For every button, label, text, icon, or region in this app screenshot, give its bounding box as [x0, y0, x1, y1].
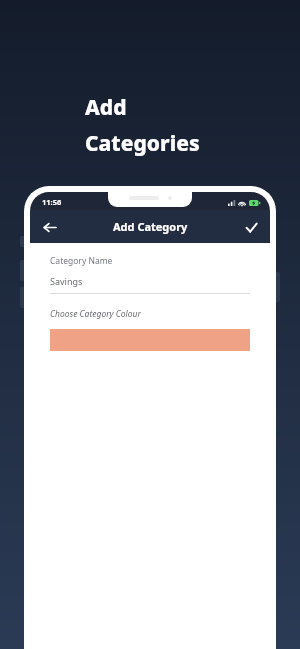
- button[interactable]: Back: [36, 214, 62, 240]
- staticText: Choose Category Colour: [50, 308, 141, 320]
- staticText: Savings: [50, 275, 83, 287]
- staticText: Category Name: [50, 255, 113, 267]
- staticText: Add Category: [113, 219, 188, 234]
- button[interactable]: Save: [238, 214, 264, 240]
- staticText: 11:56: [42, 197, 62, 207]
- staticText: Add: [85, 93, 127, 122]
- staticText: Categories: [85, 129, 200, 158]
